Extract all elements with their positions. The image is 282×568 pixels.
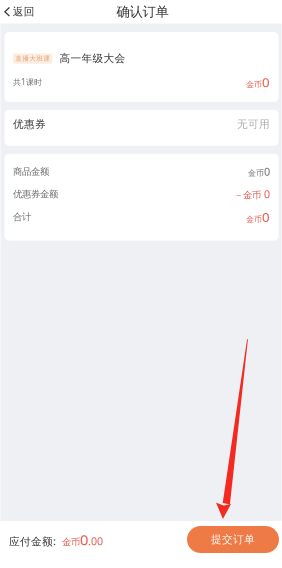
staticText: 合计 — [13, 211, 31, 223]
staticText: 0 — [264, 164, 270, 179]
button[interactable]: 优惠券 — [4, 110, 278, 146]
staticText: 金币 — [248, 168, 264, 178]
staticText: 优惠券 — [13, 118, 46, 131]
staticText: 金币 — [246, 214, 262, 224]
staticText: 0 — [262, 208, 270, 226]
staticText: 共1课时 — [13, 77, 42, 87]
staticText: 应付金额: — [9, 534, 56, 548]
staticText: 优惠券金额 — [13, 188, 58, 200]
staticText: 金币 — [246, 80, 262, 89]
staticText: 确认订单 — [116, 4, 168, 20]
staticText: 0 — [80, 530, 88, 549]
staticText: －金币 — [234, 189, 264, 201]
staticText: 无可用 — [237, 118, 270, 131]
staticText: 返回 — [13, 5, 35, 18]
staticText: 金币 — [62, 536, 80, 548]
staticText: 提交订单 — [211, 533, 255, 546]
staticText: 0 — [262, 73, 270, 91]
staticText: 高一年级大会 — [59, 52, 125, 65]
staticText: .00 — [88, 534, 103, 548]
staticText: 商品金额 — [13, 166, 49, 177]
button[interactable]: 提交订单 — [187, 526, 279, 553]
staticText: 直播大班课 — [15, 54, 50, 63]
button[interactable]: 返回 — [0, 0, 44, 23]
staticText: 0 — [264, 187, 270, 201]
